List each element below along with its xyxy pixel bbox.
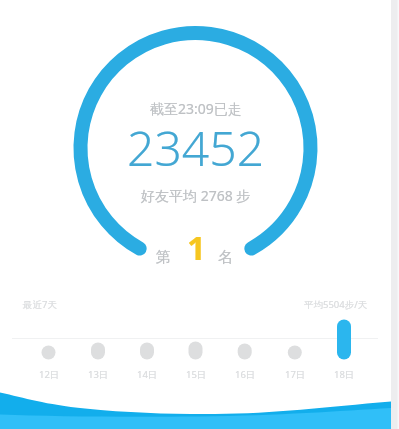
- button[interactable]: 13日: [76, 316, 120, 380]
- staticText: 18日: [334, 368, 355, 381]
- staticText: 好友平均 2768 步: [141, 186, 251, 205]
- button[interactable]: 17日: [273, 316, 317, 380]
- staticText: 17日: [285, 368, 306, 381]
- staticText: 平均5504步/天: [304, 298, 368, 311]
- button[interactable]: 16日: [223, 316, 267, 380]
- staticText: 15日: [186, 368, 207, 381]
- button[interactable]: 今日步数 23452 步: [73, 26, 317, 270]
- staticText: 最近7天: [23, 298, 57, 311]
- staticText: 1: [187, 225, 206, 263]
- button[interactable]: 最近7天: [18, 294, 66, 312]
- button[interactable]: 15日: [174, 316, 218, 380]
- staticText: 23452: [127, 115, 265, 180]
- staticText: 第: [156, 248, 171, 267]
- button[interactable]: 18日: [322, 316, 366, 380]
- button[interactable]: 平均5504步/天: [299, 294, 373, 312]
- staticText: 名: [218, 248, 233, 267]
- staticText: 13日: [88, 368, 109, 381]
- button[interactable]: 12日: [27, 316, 71, 380]
- staticText: 12日: [39, 368, 60, 381]
- staticText: 16日: [235, 368, 256, 381]
- staticText: 14日: [137, 368, 158, 381]
- button[interactable]: 14日: [125, 316, 169, 380]
- staticText: 截至23:09已走: [150, 99, 242, 118]
- button[interactable]: 第: [150, 230, 240, 268]
